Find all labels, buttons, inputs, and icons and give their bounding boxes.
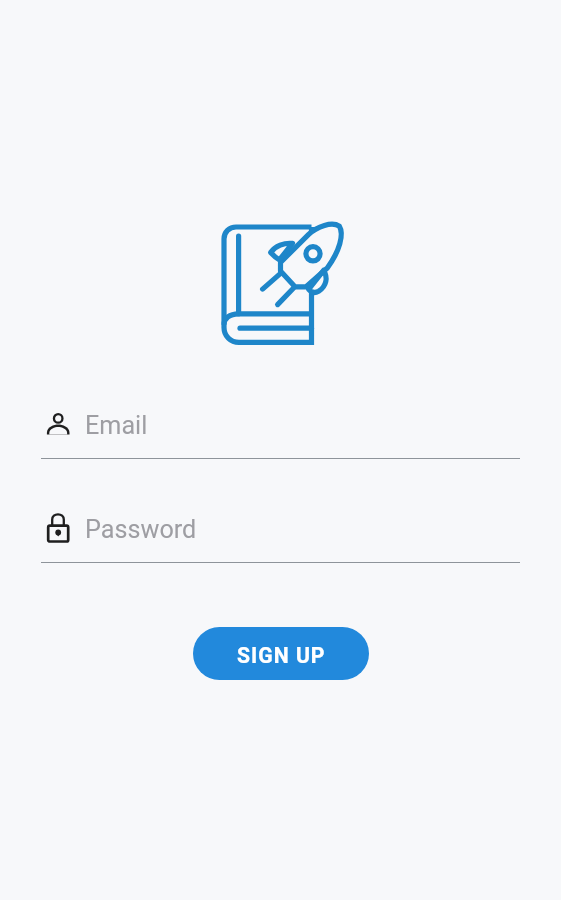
button[interactable]: Email [41,398,520,464]
staticText: Email [85,411,148,441]
button[interactable]: SIGN UP [193,627,369,680]
staticText: Password [85,515,197,545]
button[interactable]: Password [41,499,520,568]
staticText: SIGN UP [237,643,326,668]
